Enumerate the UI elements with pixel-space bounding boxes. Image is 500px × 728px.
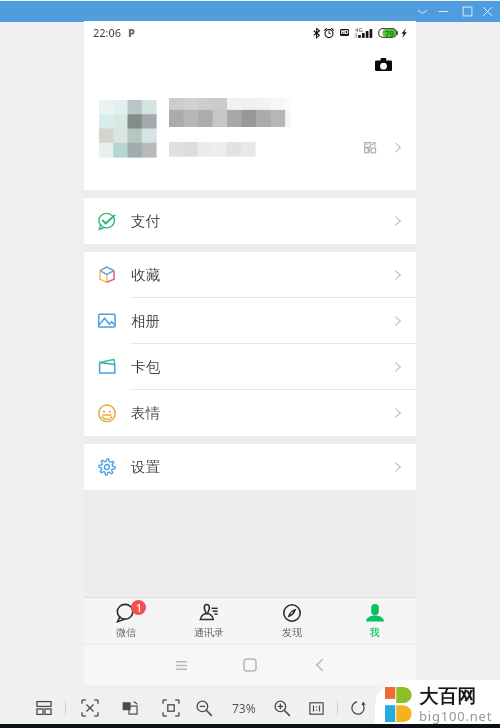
- staticText: 收藏: [131, 266, 395, 284]
- button[interactable]: Maximize: [456, 1, 478, 21]
- button[interactable]: Recent apps: [163, 647, 199, 683]
- staticText: big100.net: [419, 707, 493, 725]
- staticText: 22:06: [93, 25, 122, 40]
- staticText: 表情: [131, 404, 395, 422]
- button[interactable]: 设置: [84, 444, 416, 490]
- button[interactable]: 发现: [250, 597, 333, 644]
- staticText: 卡包: [131, 358, 395, 376]
- button[interactable]: 收藏: [84, 252, 416, 298]
- button[interactable]: Close: [476, 1, 498, 21]
- staticText: 支付: [131, 212, 395, 230]
- button[interactable]: Zoom out: [193, 697, 215, 719]
- button[interactable]: Smart cutout: [79, 697, 101, 719]
- button[interactable]: 通讯录: [167, 597, 250, 644]
- button[interactable]: Collapse: [411, 1, 433, 21]
- staticText: 相册: [131, 312, 395, 330]
- staticText: 大百网: [419, 685, 476, 709]
- staticText: HD: [341, 29, 349, 36]
- staticText: 发现: [282, 626, 302, 639]
- staticText: 我: [370, 626, 380, 639]
- button[interactable]: Translate: [119, 697, 141, 719]
- button[interactable]: 我: [333, 597, 416, 644]
- button[interactable]: Layout: [33, 697, 55, 719]
- staticText: 79: [385, 28, 395, 38]
- button[interactable]: Home: [232, 647, 268, 683]
- button[interactable]: Back: [301, 647, 337, 683]
- button[interactable]: Camera: [370, 51, 396, 77]
- button[interactable]: Zoom in: [271, 697, 293, 719]
- button[interactable]: 1: [84, 597, 167, 644]
- button[interactable]: 表情: [84, 390, 416, 436]
- button[interactable]: 支付: [84, 198, 416, 244]
- staticText: 微信: [116, 626, 136, 639]
- staticText: 73%: [232, 700, 256, 716]
- staticText: P: [128, 25, 135, 40]
- staticText: 通讯录: [194, 626, 224, 639]
- staticText: 设置: [131, 458, 395, 476]
- button[interactable]: Rotate: [347, 697, 369, 719]
- button[interactable]: 相册: [84, 298, 416, 344]
- button[interactable]: Fit to window: [160, 697, 182, 719]
- button[interactable]: My QR code: [357, 134, 383, 160]
- button[interactable]: 卡包: [84, 344, 416, 390]
- staticText: 4G: [355, 26, 363, 34]
- button[interactable]: Minimize: [432, 1, 454, 21]
- staticText: 1: [136, 601, 142, 615]
- button[interactable]: Actual size: [305, 697, 327, 719]
